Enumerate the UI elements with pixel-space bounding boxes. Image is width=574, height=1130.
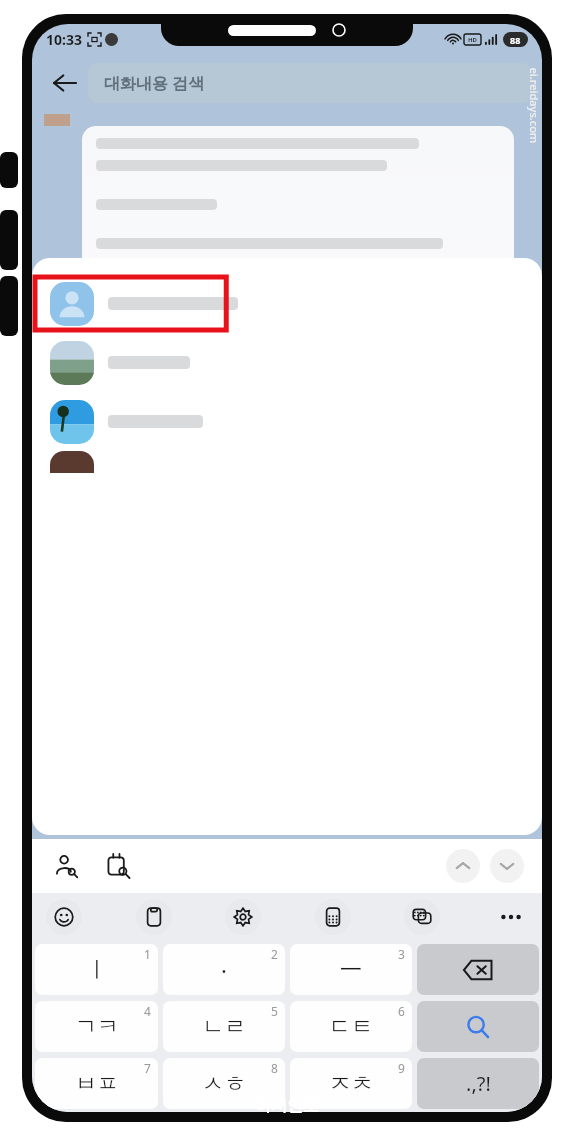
button[interactable]: Search by date	[102, 849, 136, 883]
staticText: 이지인포	[255, 1096, 319, 1116]
staticText: 10:33	[46, 30, 82, 49]
staticText: ㅂㅍ	[75, 1070, 119, 1098]
button[interactable]: Back	[42, 60, 88, 106]
staticText: 5	[271, 1003, 278, 1019]
staticText: 9	[398, 1060, 405, 1076]
staticText: 7	[144, 1060, 151, 1076]
staticText: 6	[398, 1003, 405, 1019]
button[interactable]: .,?!	[417, 1058, 539, 1109]
staticText: 88	[510, 34, 521, 46]
button[interactable]: Search by person	[50, 849, 84, 883]
button[interactable]	[32, 451, 542, 477]
button[interactable]: ㄱㅋ	[35, 1001, 158, 1052]
staticText: ㅅㅎ	[202, 1070, 246, 1098]
button[interactable]: ㄷㅌ	[290, 1001, 412, 1052]
button[interactable]	[32, 392, 542, 451]
button[interactable]: ㅂㅍ	[35, 1058, 158, 1109]
staticText: ㅣ	[86, 956, 108, 984]
staticText: ㄱㅋ	[75, 1013, 119, 1041]
staticText: ·	[221, 955, 227, 985]
button[interactable]: Previous result	[446, 849, 480, 883]
button[interactable]: Clipboard	[136, 899, 172, 935]
button[interactable]	[32, 333, 542, 392]
button[interactable]: ㅣ	[35, 944, 158, 995]
button[interactable]: Settings	[225, 899, 261, 935]
staticText: 一	[340, 956, 362, 984]
button[interactable]: Next result	[490, 849, 524, 883]
staticText: ei.reidays.com	[526, 67, 541, 143]
button[interactable]: ㅅㅎ	[163, 1058, 285, 1109]
staticText: .,?!	[466, 1070, 491, 1097]
staticText: HD	[468, 36, 477, 44]
staticText: 1	[144, 946, 151, 962]
button[interactable]: 一	[290, 944, 412, 995]
staticText: 8	[271, 1060, 278, 1076]
staticText: 4	[144, 1003, 151, 1019]
button[interactable]: More options	[494, 900, 528, 934]
button[interactable]: ·	[163, 944, 285, 995]
button[interactable]: ㄴㄹ	[163, 1001, 285, 1052]
staticText: 대화내용 검색	[104, 72, 205, 94]
button[interactable]: ㅈㅊ	[290, 1058, 412, 1109]
staticText: 3	[398, 946, 405, 962]
button[interactable]: Backspace	[417, 944, 539, 995]
button[interactable]: Switch keyboard	[404, 899, 440, 935]
staticText: ㄷㅌ	[329, 1013, 373, 1041]
staticText: 2	[271, 946, 278, 962]
button[interactable]	[32, 274, 542, 333]
button[interactable]: Search	[417, 1001, 539, 1052]
button[interactable]: Number pad	[315, 899, 351, 935]
staticText: ㄴㄹ	[202, 1013, 246, 1041]
button[interactable]: Emoji	[46, 899, 82, 935]
button[interactable]: 대화내용 검색	[88, 63, 532, 103]
staticText: ㅈㅊ	[329, 1070, 373, 1098]
